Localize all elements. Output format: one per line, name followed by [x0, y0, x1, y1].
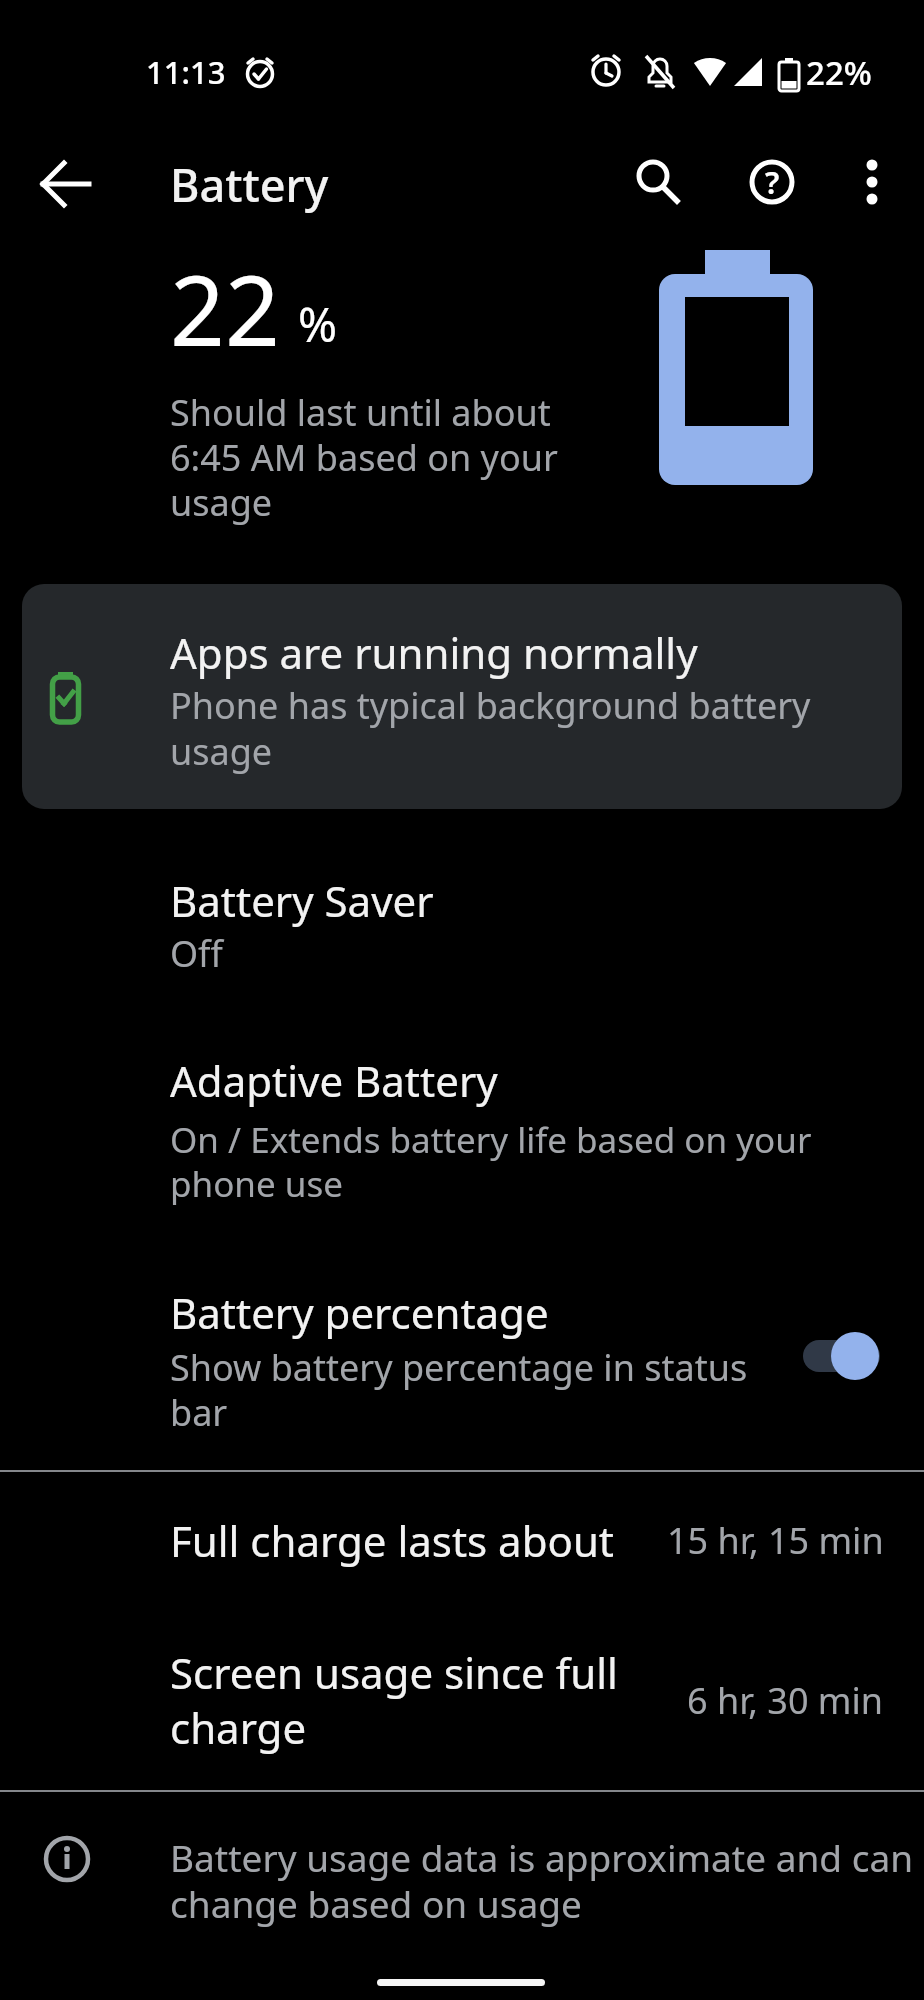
- button[interactable]: [617, 146, 689, 218]
- staticText: Battery percentage: [170, 1284, 549, 1341]
- staticText: Battery: [170, 154, 329, 215]
- staticText: Adaptive Battery: [170, 1052, 498, 1109]
- staticText: usage: [170, 478, 273, 527]
- staticText: change based on usage: [170, 1878, 582, 1928]
- staticText: Off: [170, 929, 223, 978]
- button[interactable]: Screen usage since full: [0, 1608, 924, 1788]
- staticText: Screen usage since full: [170, 1644, 618, 1701]
- staticText: charge: [170, 1699, 307, 1756]
- staticText: 6:45 AM based on your: [170, 433, 558, 482]
- button[interactable]: Battery percentage: [0, 1267, 924, 1462]
- staticText: usage: [170, 727, 273, 776]
- staticText: %: [298, 292, 338, 356]
- staticText: On / Extends battery life based on your: [170, 1116, 812, 1164]
- staticText: 22: [170, 243, 280, 374]
- staticText: bar: [170, 1388, 228, 1437]
- button[interactable]: Full charge lasts about: [0, 1473, 924, 1608]
- staticText: Battery Saver: [170, 872, 434, 929]
- staticText: Full charge lasts about: [170, 1512, 615, 1569]
- button[interactable]: ?: [736, 146, 808, 218]
- staticText: Apps are running normally: [170, 624, 698, 681]
- staticText: Phone has typical background battery: [170, 681, 811, 730]
- staticText: Should last until about: [170, 388, 551, 437]
- staticText: phone use: [170, 1160, 343, 1208]
- staticText: Show battery percentage in status: [170, 1343, 748, 1392]
- staticText: 11:13: [146, 51, 226, 93]
- staticText: 15 hr, 15 min: [667, 1516, 884, 1565]
- button[interactable]: [836, 146, 908, 218]
- staticText: Battery usage data is approximate and ca…: [170, 1832, 914, 1882]
- staticText: 6 hr, 30 min: [687, 1676, 884, 1725]
- staticText: ?: [765, 161, 780, 203]
- button[interactable]: Apps are running normally: [22, 584, 902, 809]
- staticText: 22%: [806, 50, 872, 95]
- button[interactable]: Battery Saver: [0, 850, 924, 990]
- button[interactable]: Adaptive Battery: [0, 1035, 924, 1225]
- button[interactable]: [30, 148, 102, 220]
